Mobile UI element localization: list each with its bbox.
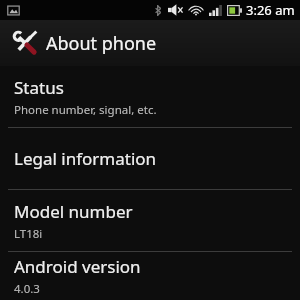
other: Tools [13, 31, 37, 55]
button[interactable]: Status [0, 66, 300, 127]
staticText: Phone number, signal, etc. [14, 102, 157, 118]
staticText: Android version [14, 255, 141, 278]
staticText: 3:26 am [246, 1, 295, 19]
button[interactable]: Android version [0, 252, 300, 300]
staticText: Model number [14, 200, 133, 223]
staticText: Status [14, 76, 64, 99]
staticText: LT18i [14, 226, 43, 242]
button[interactable]: Tools [0, 20, 300, 66]
button[interactable]: Legal information [0, 128, 300, 189]
button[interactable]: Model number [0, 190, 300, 251]
other: Screenshot notification [7, 4, 20, 17]
staticText: About phone [46, 31, 157, 56]
staticText: 4.0.3 [14, 281, 40, 297]
staticText: Legal information [14, 147, 157, 170]
